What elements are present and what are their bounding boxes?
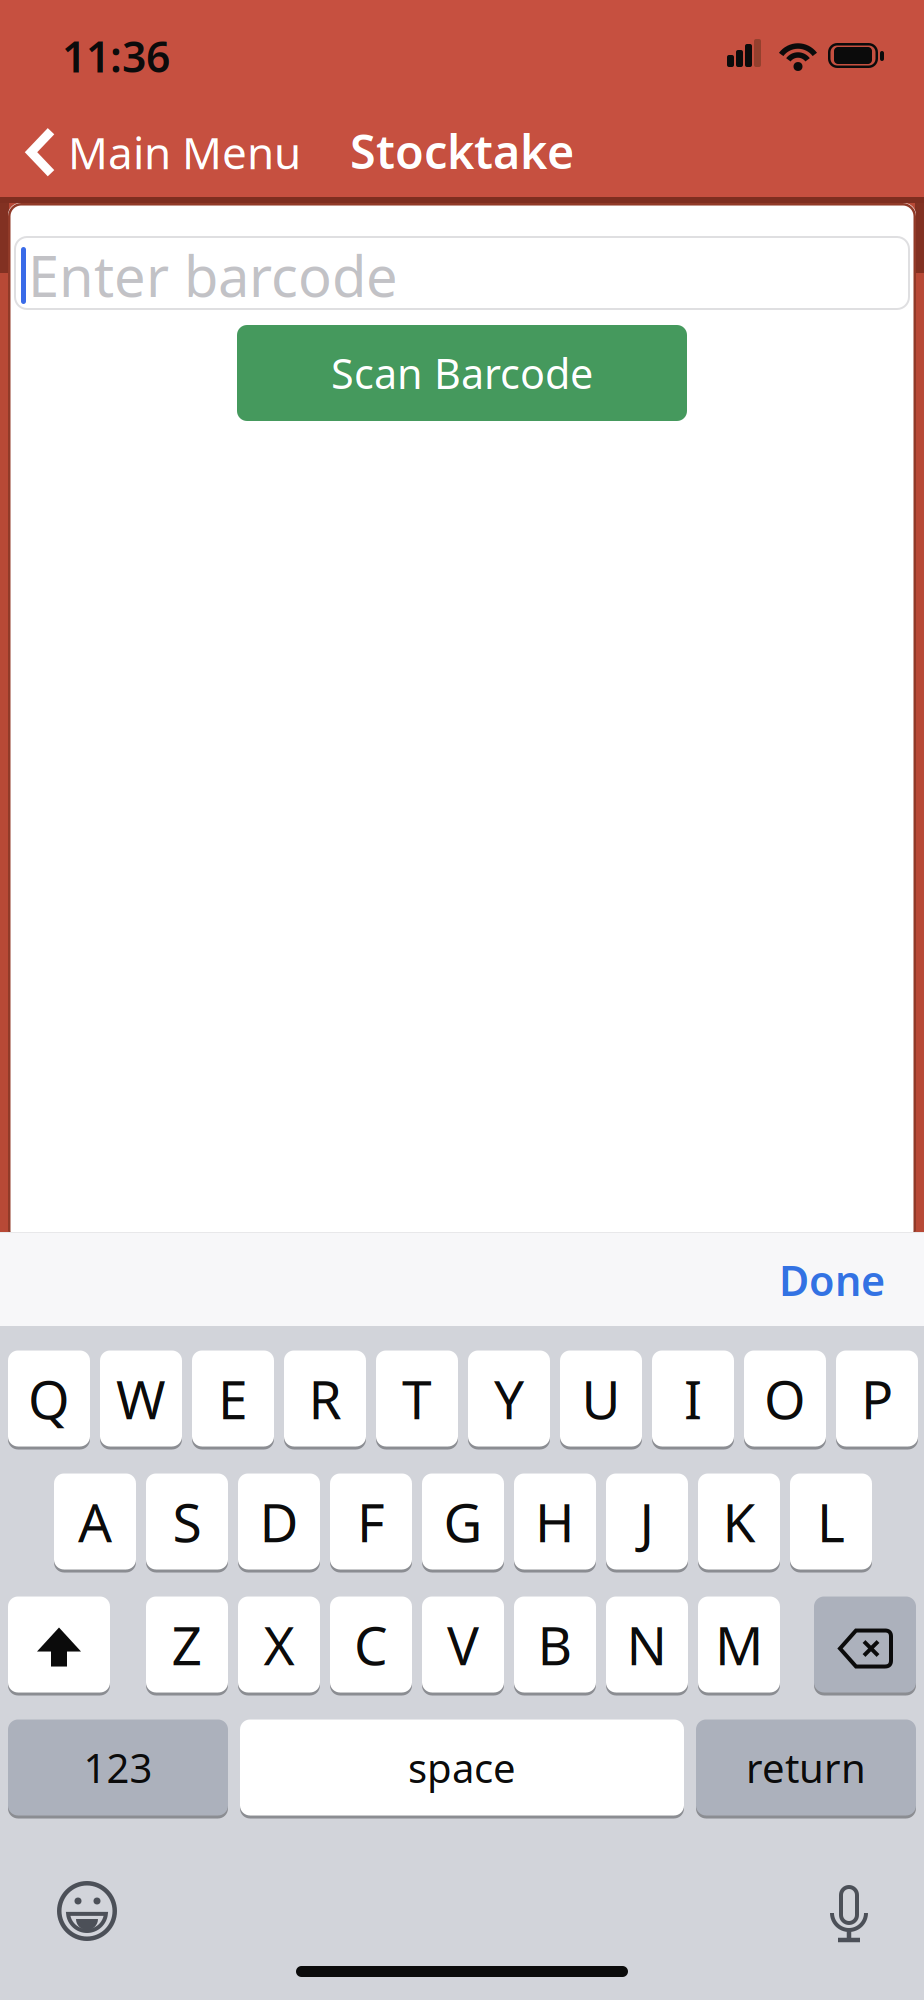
- button[interactable]: Delete: [814, 1595, 916, 1694]
- button[interactable]: X: [238, 1595, 320, 1694]
- staticText: V: [447, 1609, 479, 1680]
- staticText: Y: [494, 1363, 524, 1434]
- staticText: C: [354, 1609, 388, 1680]
- button[interactable]: G: [422, 1472, 504, 1571]
- staticText: L: [817, 1486, 845, 1557]
- button[interactable]: Dictation: [825, 1885, 873, 1945]
- staticText: F: [357, 1486, 385, 1557]
- staticText: space: [408, 1741, 516, 1794]
- staticText: Done: [779, 1253, 885, 1307]
- staticText: P: [861, 1363, 893, 1434]
- staticText: U: [581, 1363, 620, 1434]
- button[interactable]: K: [698, 1472, 780, 1571]
- staticText: S: [172, 1486, 201, 1557]
- button[interactable]: F: [330, 1472, 412, 1571]
- button[interactable]: Y: [468, 1349, 550, 1448]
- staticText: H: [535, 1486, 575, 1557]
- staticText: return: [746, 1741, 866, 1794]
- staticText: Q: [28, 1363, 70, 1434]
- button[interactable]: Enter barcode: [14, 236, 910, 310]
- button[interactable]: Scan Barcode: [237, 325, 687, 421]
- button[interactable]: return: [696, 1718, 916, 1817]
- staticText: A: [78, 1486, 112, 1557]
- button[interactable]: R: [284, 1349, 366, 1448]
- staticText: N: [626, 1609, 667, 1680]
- staticText: K: [722, 1486, 755, 1557]
- button[interactable]: Main Menu: [26, 123, 301, 181]
- staticText: W: [116, 1363, 166, 1434]
- staticText: D: [259, 1486, 298, 1557]
- button[interactable]: W: [100, 1349, 182, 1448]
- button[interactable]: U: [560, 1349, 642, 1448]
- button[interactable]: A: [54, 1472, 136, 1571]
- staticText: Z: [171, 1609, 202, 1680]
- staticText: Enter barcode: [28, 238, 398, 312]
- button[interactable]: S: [146, 1472, 228, 1571]
- staticText: Stocktake: [350, 120, 574, 182]
- button[interactable]: V: [422, 1595, 504, 1694]
- button[interactable]: P: [836, 1349, 918, 1448]
- button[interactable]: Z: [146, 1595, 228, 1694]
- button[interactable]: C: [330, 1595, 412, 1694]
- button[interactable]: E: [192, 1349, 274, 1448]
- staticText: T: [402, 1363, 432, 1434]
- staticText: 11:36: [62, 28, 170, 84]
- button[interactable]: 123: [8, 1718, 228, 1817]
- button[interactable]: Emoji: [57, 1881, 117, 1941]
- button[interactable]: H: [514, 1472, 596, 1571]
- button[interactable]: I: [652, 1349, 734, 1448]
- staticText: Main Menu: [68, 123, 301, 181]
- button[interactable]: D: [238, 1472, 320, 1571]
- button[interactable]: space: [240, 1718, 684, 1817]
- staticText: M: [715, 1609, 763, 1680]
- staticText: X: [263, 1609, 294, 1680]
- staticText: B: [537, 1609, 572, 1680]
- button[interactable]: O: [744, 1349, 826, 1448]
- staticText: Scan Barcode: [331, 346, 593, 400]
- button[interactable]: B: [514, 1595, 596, 1694]
- staticText: J: [639, 1486, 654, 1557]
- staticText: E: [218, 1363, 248, 1434]
- button[interactable]: J: [606, 1472, 688, 1571]
- button[interactable]: Done: [779, 1253, 885, 1307]
- button[interactable]: N: [606, 1595, 688, 1694]
- staticText: G: [443, 1486, 482, 1557]
- button[interactable]: Q: [8, 1349, 90, 1448]
- button[interactable]: L: [790, 1472, 872, 1571]
- button[interactable]: T: [376, 1349, 458, 1448]
- staticText: 123: [83, 1741, 152, 1794]
- staticText: I: [684, 1363, 702, 1434]
- staticText: O: [764, 1363, 806, 1434]
- staticText: R: [308, 1363, 341, 1434]
- button[interactable]: M: [698, 1595, 780, 1694]
- button[interactable]: Shift: [8, 1595, 110, 1694]
